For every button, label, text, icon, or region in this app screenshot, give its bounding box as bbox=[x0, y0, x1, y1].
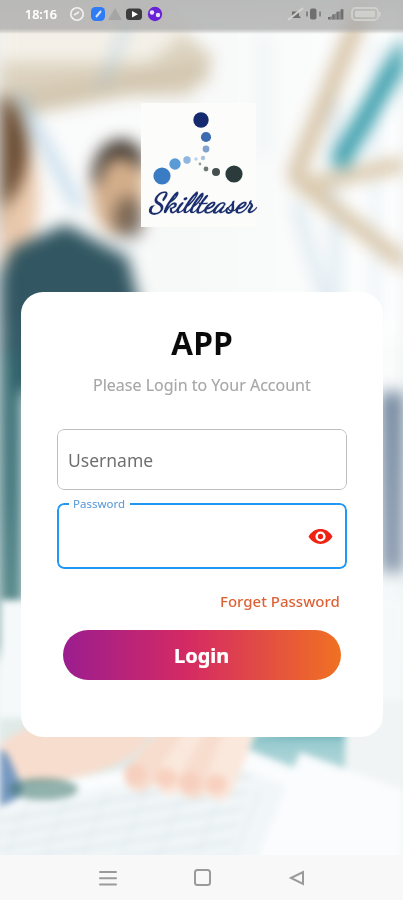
button[interactable]: Recents bbox=[85, 855, 131, 900]
staticText: APP bbox=[171, 321, 233, 365]
staticText: Username bbox=[68, 448, 154, 472]
button[interactable]: Login bbox=[63, 630, 341, 680]
button[interactable]: Show password bbox=[305, 521, 335, 551]
button[interactable]: Forget Password bbox=[220, 591, 340, 611]
button[interactable] bbox=[57, 503, 347, 569]
staticText: Forget Password bbox=[220, 591, 340, 611]
staticText: 18:16 bbox=[25, 6, 58, 23]
button[interactable]: Back bbox=[274, 855, 320, 900]
staticText: Skillteaser bbox=[149, 186, 255, 220]
staticText: Password bbox=[73, 496, 126, 512]
button[interactable]: Home bbox=[179, 855, 225, 900]
staticText: Login bbox=[174, 642, 230, 669]
staticText: Please Login to Your Account bbox=[93, 374, 311, 396]
button[interactable]: Username bbox=[57, 429, 347, 490]
